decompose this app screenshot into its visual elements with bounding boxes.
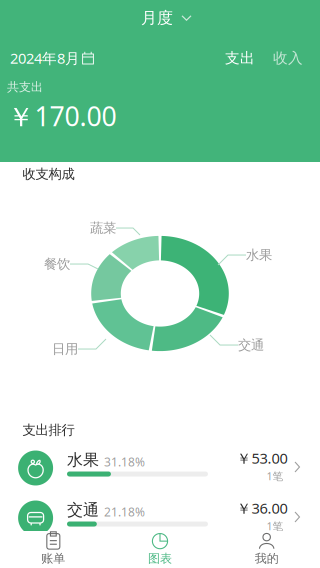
button[interactable]: 收入 [273,48,303,68]
staticText: 我的 [255,551,279,566]
staticText: 共支出 [7,80,43,94]
staticText: 月度 [141,8,173,28]
button[interactable]: 账单 [0,531,107,568]
staticText: 蔬菜 [90,220,116,236]
staticText: 支出排行 [22,422,74,438]
button[interactable]: 图表 [107,531,213,568]
staticText: 21.18% [104,504,145,520]
staticText: 餐饮 [44,256,70,272]
button[interactable]: 支出 [225,48,255,68]
staticText: 交通 [238,337,264,353]
button[interactable]: 水果 [0,445,320,491]
staticText: 1笔 [266,519,283,533]
staticText: 交通 [67,500,99,520]
button[interactable]: 我的 [213,531,320,568]
staticText: 水果 [67,450,99,470]
button[interactable]: 交通 [0,495,320,541]
staticText: 账单 [41,551,65,566]
staticText: ￥170.00 [7,98,116,134]
button[interactable]: 月度 [122,4,212,32]
staticText: ￥36.00 [236,498,287,518]
staticText: 1笔 [266,469,283,483]
button[interactable]: 2024年8月 [10,48,94,68]
staticText: 日用 [52,341,78,357]
staticText: 支出 [225,49,255,67]
staticText: 图表 [148,551,172,566]
staticText: 收支构成 [22,166,74,182]
staticText: ￥53.00 [236,448,287,468]
staticText: 收入 [273,49,303,67]
staticText: 水果 [246,247,272,263]
staticText: 31.18% [104,454,145,470]
staticText: 2024年8月 [10,48,80,68]
